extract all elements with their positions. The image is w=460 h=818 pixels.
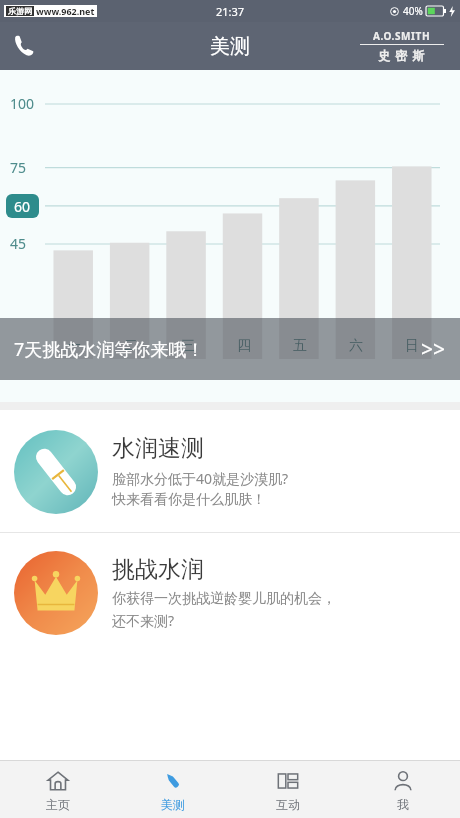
staticText: 美测 bbox=[210, 34, 250, 59]
staticText: 快来看看你是什么肌肤！ bbox=[112, 491, 266, 509]
staticText: 你获得一次挑战逆龄婴儿肌的机会， bbox=[112, 590, 336, 608]
staticText: 60 bbox=[14, 197, 31, 216]
button[interactable]: 7天挑战水润等你来哦！ bbox=[0, 318, 460, 380]
staticText: 100 bbox=[10, 94, 35, 113]
staticText: 史 密 斯 bbox=[378, 47, 426, 63]
staticText: 7天挑战水润等你来哦！ bbox=[14, 337, 421, 362]
button[interactable]: 水润速测 bbox=[0, 412, 460, 532]
staticText: 脸部水分低于40就是沙漠肌? bbox=[112, 469, 289, 488]
staticText: >> bbox=[421, 335, 446, 364]
staticText: 45 bbox=[10, 234, 27, 253]
staticText: 互动 bbox=[276, 797, 300, 812]
staticText: 日 bbox=[405, 337, 419, 355]
button[interactable]: Call bbox=[0, 22, 48, 70]
staticText: A.O.SMITH bbox=[373, 29, 431, 43]
staticText: 还不来测? bbox=[112, 611, 175, 630]
button[interactable]: 美测 bbox=[115, 761, 230, 818]
staticText: 五 bbox=[293, 337, 307, 355]
staticText: www.962.net bbox=[36, 5, 95, 17]
staticText: 三 bbox=[181, 337, 195, 355]
staticText: 我 bbox=[397, 797, 409, 812]
staticText: 六 bbox=[349, 337, 363, 355]
staticText: 美测 bbox=[161, 797, 185, 812]
staticText: 挑战水润 bbox=[112, 555, 204, 584]
staticText: 二 bbox=[124, 337, 138, 355]
staticText: 乐游网 bbox=[8, 6, 32, 16]
staticText: 水润速测 bbox=[112, 434, 204, 463]
staticText: 主页 bbox=[46, 797, 70, 812]
staticText: 四 bbox=[237, 337, 251, 355]
button[interactable]: 我 bbox=[345, 761, 460, 818]
staticText: 21:37 bbox=[216, 4, 245, 19]
staticText: 一 bbox=[67, 337, 81, 355]
staticText: 75 bbox=[10, 158, 27, 177]
staticText: 40% bbox=[403, 4, 423, 18]
button[interactable]: 主页 bbox=[0, 761, 115, 818]
button[interactable]: 挑战水润 bbox=[0, 533, 460, 653]
button[interactable]: 互动 bbox=[230, 761, 345, 818]
